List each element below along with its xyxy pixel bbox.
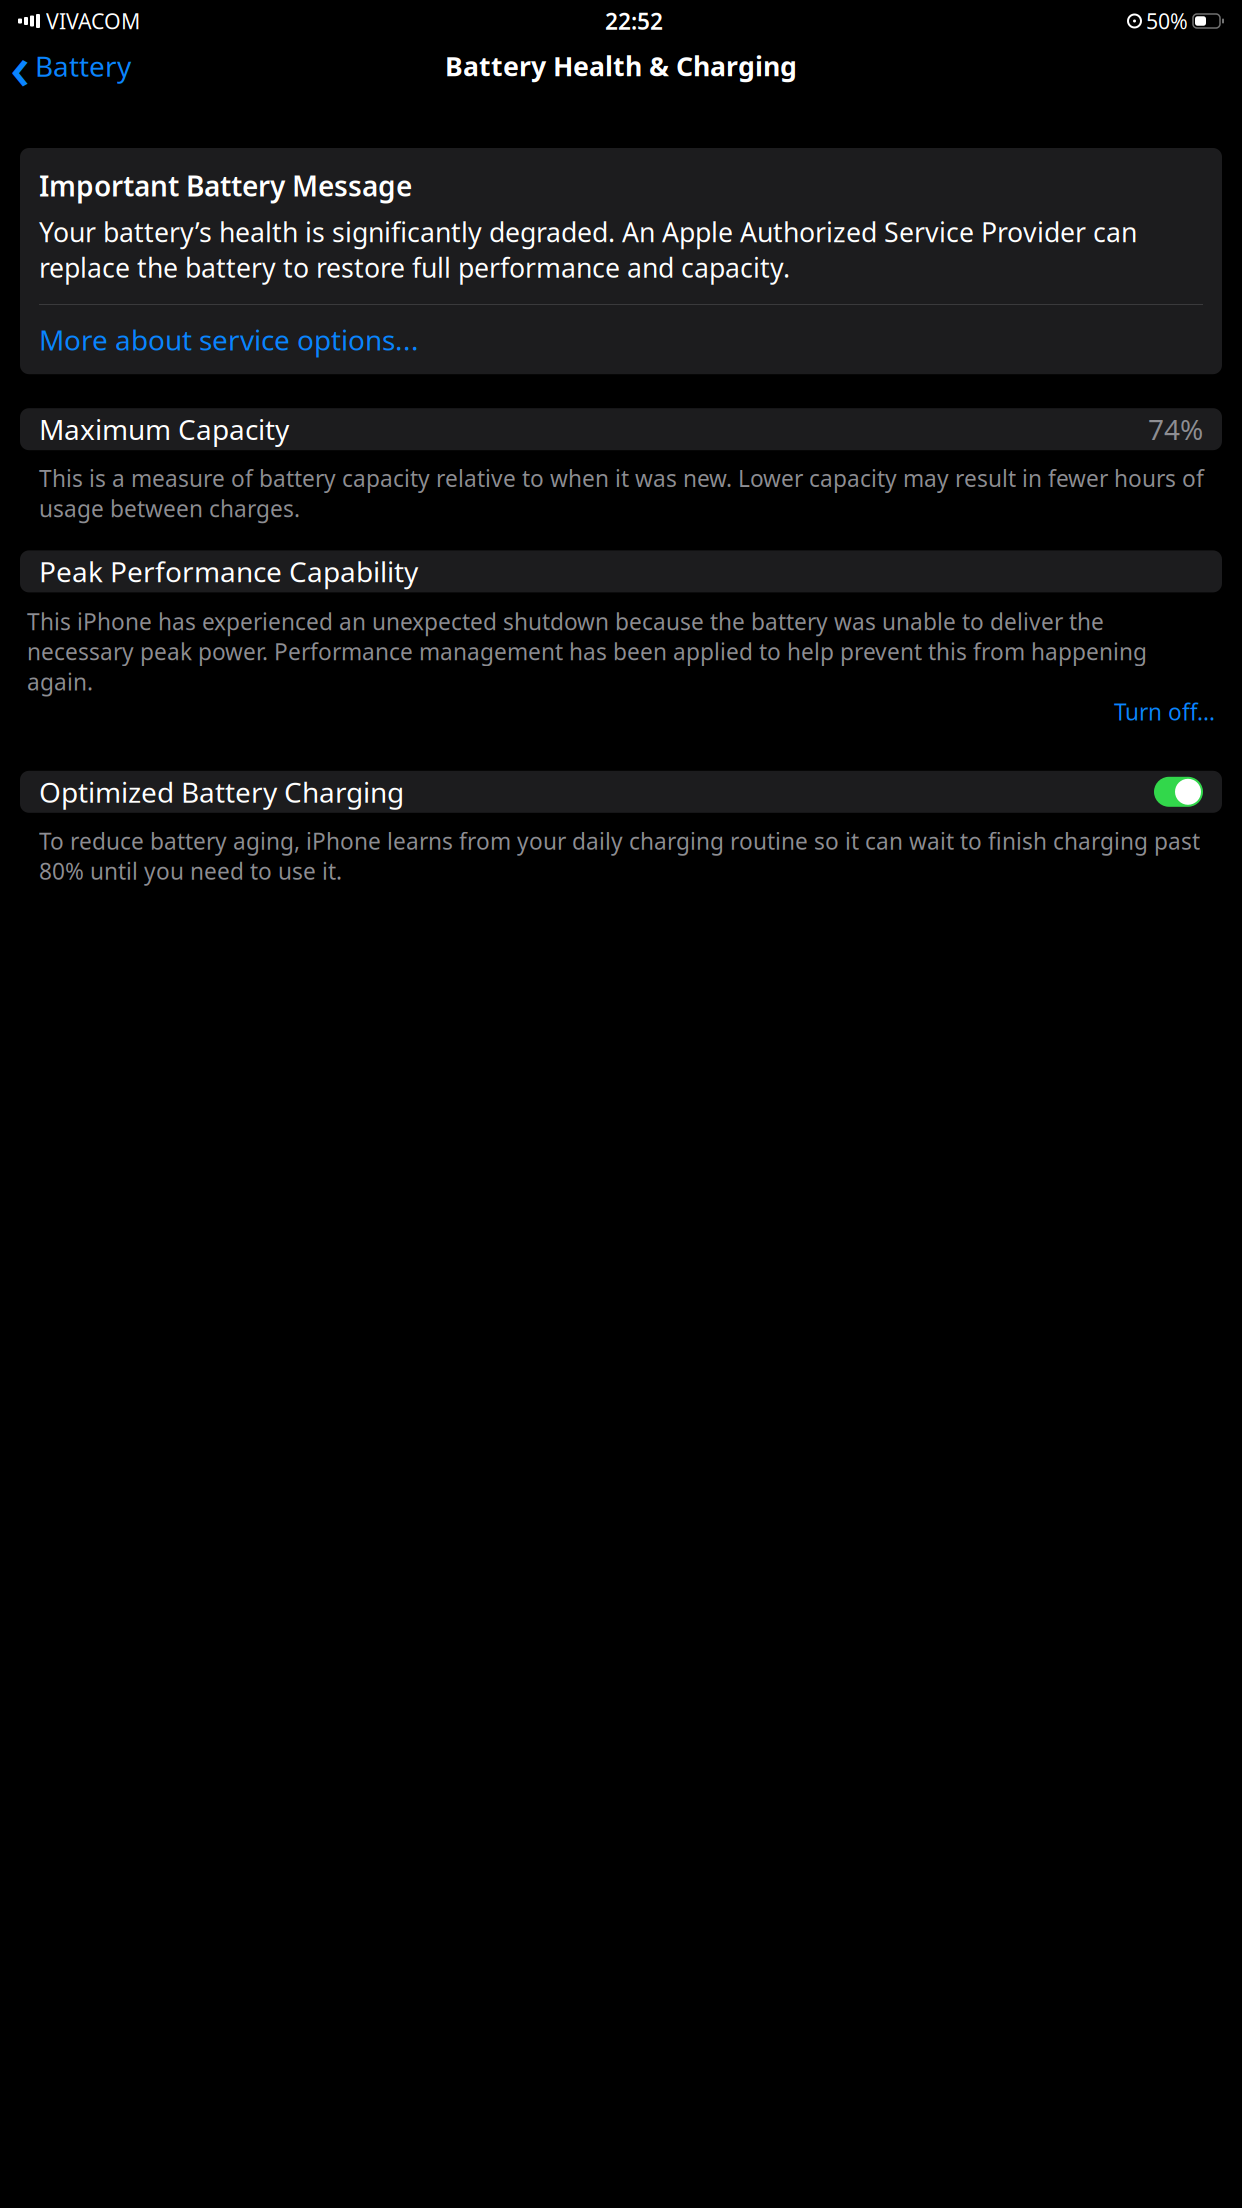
staticText: Your battery’s health is significantly d… — [39, 214, 1137, 285]
button[interactable]: More about service options... — [39, 305, 1203, 374]
staticText: More about service options... — [39, 321, 419, 358]
staticText: To reduce battery aging, iPhone learns f… — [39, 826, 1200, 886]
button[interactable]: Optimized Battery Charging, on — [1154, 777, 1203, 807]
staticText: 22:52 — [605, 6, 663, 36]
staticText: Peak Performance Capability — [39, 553, 418, 590]
staticText: This is a measure of battery capacity re… — [39, 463, 1204, 523]
button[interactable]: ‹ — [0, 43, 139, 89]
staticText: VIVACOM — [46, 7, 140, 35]
staticText: Turn off... — [1114, 697, 1215, 727]
staticText: Maximum Capacity — [39, 411, 289, 448]
staticText: This iPhone has experienced an unexpecte… — [27, 606, 1147, 697]
staticText: ‹ — [10, 25, 30, 107]
button[interactable]: Maximum Capacity — [0, 408, 1242, 450]
staticText: Battery — [35, 47, 131, 85]
button[interactable]: Peak Performance Capability — [0, 550, 1242, 592]
staticText: Battery Health & Charging — [445, 48, 797, 84]
staticText: 50% — [1146, 7, 1188, 35]
staticText: Important Battery Message — [39, 167, 412, 204]
staticText: Optimized Battery Charging — [39, 773, 404, 810]
staticText: 74% — [1148, 411, 1203, 448]
button[interactable]: Turn off... — [27, 697, 1215, 727]
